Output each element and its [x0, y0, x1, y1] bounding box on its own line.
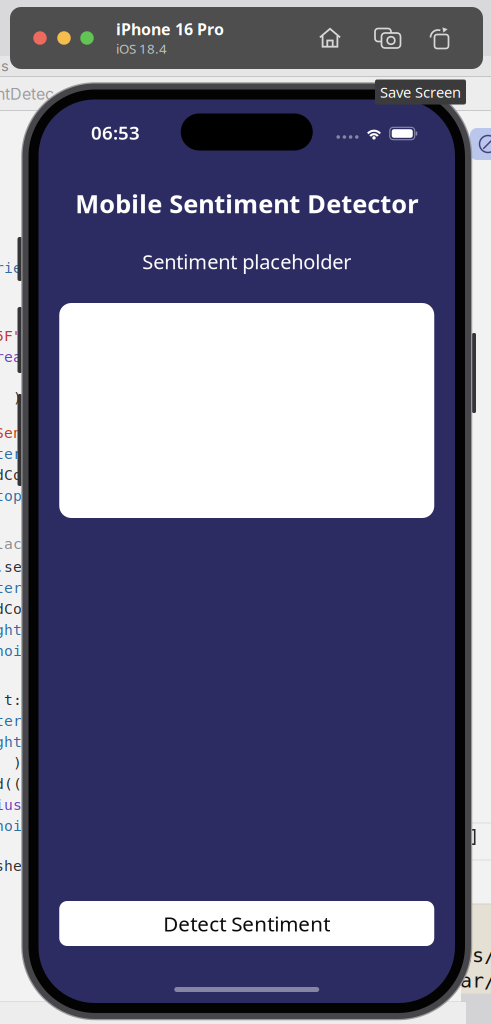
- staticText: 5F": [0, 327, 22, 345]
- staticText: Executable: [91, 1006, 160, 1022]
- staticText: Previous: [194, 1006, 249, 1022]
- staticText: ): [13, 389, 22, 407]
- staticText: ter: [0, 445, 22, 463]
- button[interactable]: Home: [319, 27, 341, 48]
- staticText: t:: [4, 691, 22, 709]
- staticText: ter: [0, 712, 22, 730]
- staticText: hoi: [0, 642, 22, 660]
- staticText: ght: [0, 733, 22, 751]
- staticText: Mobile Sentiment Detector: [75, 187, 418, 220]
- button[interactable]: Minimise: [57, 31, 71, 45]
- staticText: Save Screen: [380, 82, 461, 102]
- staticText: ter: [0, 579, 22, 597]
- staticText: es/: [460, 944, 491, 967]
- staticText: ius: [0, 796, 22, 814]
- staticText: ushe: [0, 857, 22, 875]
- staticText: (2): [283, 1006, 301, 1022]
- staticText: Sen: [0, 424, 22, 442]
- staticText: ndCo: [0, 466, 22, 484]
- staticText: Plac: [0, 535, 22, 553]
- staticText: iOS 18.4: [116, 40, 167, 57]
- staticText: Wes: [0, 57, 9, 75]
- staticText: entDetec: [0, 84, 54, 104]
- staticText: d((: [0, 775, 22, 793]
- staticText: top: [0, 487, 22, 505]
- staticText: ght: [0, 621, 22, 639]
- button[interactable]: Screenshot: [374, 27, 401, 49]
- staticText: ndCo: [0, 600, 22, 618]
- button[interactable]: Zoom: [80, 31, 94, 45]
- staticText: hoi: [0, 817, 22, 835]
- staticText: Sentiment placeholder: [142, 248, 351, 275]
- staticText: ): [13, 754, 22, 772]
- staticText: .se: [0, 558, 22, 576]
- staticText: 06:53: [91, 120, 140, 145]
- button[interactable]: Close: [33, 31, 47, 45]
- staticText: Detect Sentiment: [163, 909, 330, 937]
- staticText: rie: [0, 259, 22, 277]
- staticText: rea: [0, 348, 22, 366]
- button[interactable]: Save Screen: [430, 27, 450, 49]
- button[interactable]: Detect Sentiment: [59, 901, 434, 946]
- staticText: ar/d: [460, 969, 491, 992]
- staticText: iPhone 16 Pro: [116, 18, 224, 40]
